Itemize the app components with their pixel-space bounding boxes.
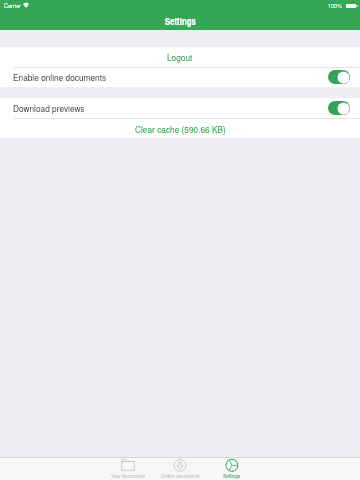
other: Online documents xyxy=(173,457,187,473)
other: Settings xyxy=(225,457,239,473)
button[interactable]: Settings xyxy=(206,457,258,480)
staticText: Enable online documents xyxy=(13,71,107,83)
button[interactable]: Online documents xyxy=(154,457,206,480)
staticText: Logout xyxy=(167,51,193,63)
staticText: Settings xyxy=(165,15,196,28)
staticText: 100% xyxy=(328,2,343,10)
staticText: Clear cache (590.66 KB) xyxy=(135,123,226,135)
staticText: Online documents xyxy=(161,472,200,479)
staticText: Settings xyxy=(223,472,241,479)
button[interactable]: Clear cache (590.66 KB) xyxy=(0,118,360,139)
staticText: Carrier xyxy=(4,2,21,10)
button[interactable]: Download previews xyxy=(0,98,360,118)
button[interactable]: Enable online documents xyxy=(0,67,360,87)
staticText: Your documents xyxy=(111,472,146,479)
button[interactable]: Your documents xyxy=(102,457,154,480)
button[interactable]: Logout xyxy=(0,47,360,67)
other: Your documents xyxy=(121,457,135,473)
staticText: Download previews xyxy=(13,102,85,114)
